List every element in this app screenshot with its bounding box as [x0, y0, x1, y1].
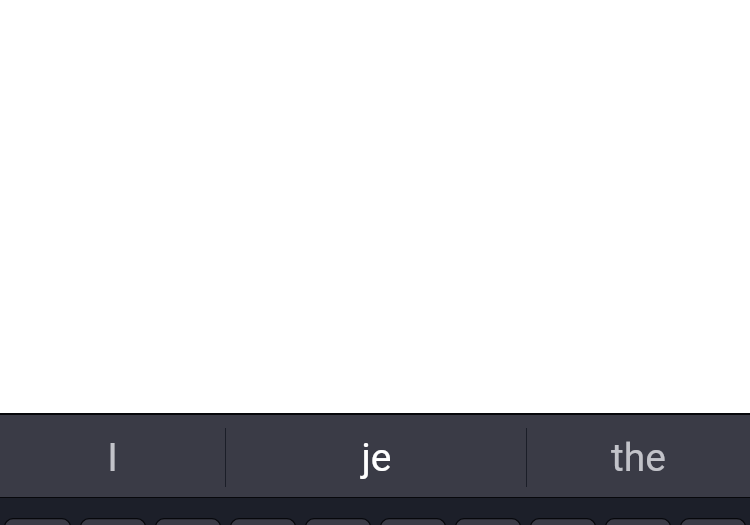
button[interactable]: Key u [455, 518, 521, 525]
button[interactable]: Key e [155, 518, 221, 525]
button[interactable]: Key q [4, 518, 71, 525]
button[interactable]: Key w [80, 518, 146, 525]
staticText: je [361, 435, 392, 481]
button[interactable]: Key r [230, 518, 296, 525]
button[interactable]: Key y [380, 518, 446, 525]
button[interactable]: Key p [680, 518, 746, 525]
button[interactable]: Key o [605, 518, 671, 525]
button[interactable]: the [527, 415, 750, 497]
staticText: I [107, 435, 118, 481]
button[interactable]: I [0, 415, 225, 497]
button[interactable]: Key i [530, 518, 596, 525]
button[interactable]: Key t [305, 518, 371, 525]
button[interactable]: je [226, 415, 526, 497]
staticText: the [611, 435, 666, 481]
